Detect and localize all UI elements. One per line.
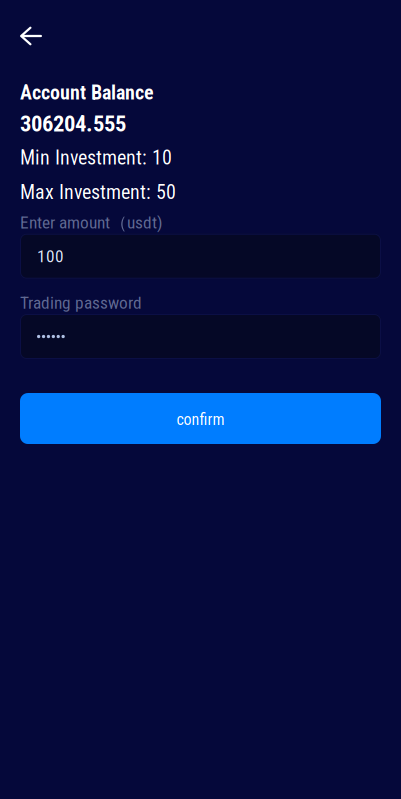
staticText: 100	[37, 246, 64, 266]
staticText: Trading password	[20, 293, 142, 313]
staticText: Max Investment: 50	[20, 180, 176, 204]
button[interactable]: Back	[20, 18, 64, 54]
staticText: Min Investment: 10	[20, 146, 172, 169]
staticText: Account Balance	[20, 81, 154, 104]
button[interactable]: confirm	[20, 393, 381, 444]
staticText: Enter amount（usdt)	[20, 212, 163, 234]
staticText: confirm	[176, 410, 224, 429]
staticText: 306204.555	[20, 110, 126, 137]
